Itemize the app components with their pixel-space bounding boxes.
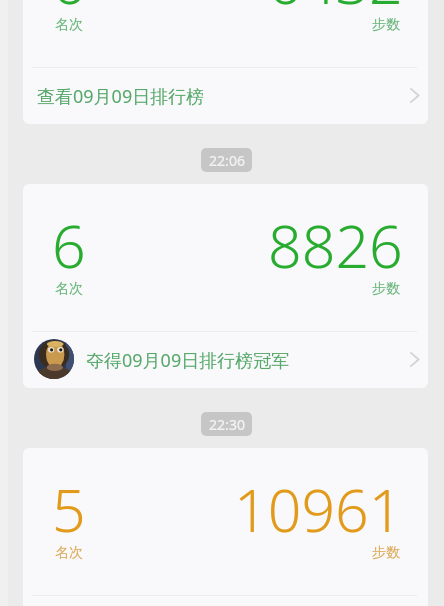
staticText: 步数 [372,544,400,562]
button[interactable]: 夺得09月09日排行榜冠军 [23,330,428,388]
staticText: 22:06 [209,151,245,170]
staticText: 6 [52,0,86,21]
staticText: 10961 [234,469,403,549]
staticText: 8826 [268,205,403,285]
staticText: 22:30 [209,415,245,434]
staticText: 步数 [372,280,400,298]
other: Open [410,352,419,367]
staticText: 6432 [268,0,403,21]
staticText: 名次 [55,280,83,298]
staticText: 步数 [372,16,400,34]
button[interactable]: 查看09月09日排行榜 [23,66,428,124]
staticText: 查看09月09日排行榜 [37,84,205,109]
staticText: 名次 [55,544,83,562]
staticText: 5 [52,469,86,549]
staticText: 名次 [55,16,83,34]
other: Open [410,88,419,103]
staticText: 6 [52,205,86,285]
staticText: 夺得09月09日排行榜冠军 [86,348,290,373]
button[interactable]: 查看09月09日排行榜 [23,594,428,606]
